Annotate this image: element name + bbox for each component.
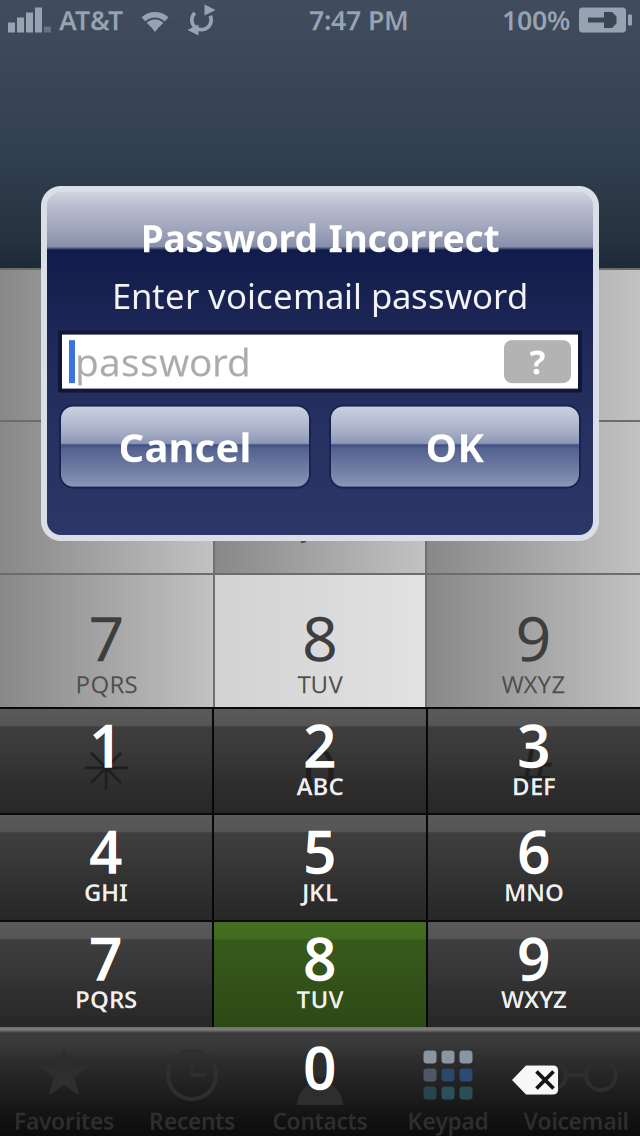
staticText: Contacts <box>272 1106 367 1136</box>
staticText: MNO <box>504 513 563 545</box>
staticText: Recents <box>149 1106 235 1136</box>
staticText: 1 <box>88 286 124 370</box>
staticText: JKL <box>302 513 337 545</box>
staticText: Cancel <box>118 420 251 473</box>
staticText: DEF <box>512 770 556 802</box>
staticText: 3 <box>517 706 551 784</box>
staticText: 9 <box>515 595 551 679</box>
staticText: 7 <box>88 595 124 679</box>
button[interactable]: Cancel <box>60 406 310 488</box>
staticText: ? <box>529 339 545 384</box>
staticText: DEF <box>512 359 555 391</box>
staticText: WXYZ <box>501 668 565 700</box>
staticText: JKL <box>302 876 338 908</box>
button[interactable]: 0 <box>214 707 426 813</box>
staticText: 0 <box>303 1028 337 1106</box>
staticText: 1 <box>89 706 123 784</box>
button[interactable]: ✳ <box>0 707 212 813</box>
button[interactable]: 4 <box>0 813 212 920</box>
staticText: WXYZ <box>501 983 567 1015</box>
button[interactable]: 0 <box>214 1043 426 1091</box>
staticText: 2 <box>302 286 338 370</box>
button[interactable]: Delete <box>512 1064 558 1096</box>
staticText: 7:47 PM <box>309 2 409 38</box>
button[interactable]: 7 <box>0 920 212 1027</box>
staticText: 100% <box>502 2 570 38</box>
staticText: PQRS <box>75 668 137 700</box>
staticText: PQRS <box>75 983 137 1015</box>
staticText: 7 <box>89 919 123 997</box>
button[interactable]: OK <box>330 406 580 488</box>
staticText: ABC <box>296 770 343 802</box>
staticText: 2 <box>303 706 337 784</box>
staticText: Favorites <box>14 1106 114 1136</box>
staticText: Password Incorrect <box>140 213 499 263</box>
button[interactable]: Contacts <box>256 1027 384 1136</box>
staticText: 0 <box>303 730 337 808</box>
staticText: TUV <box>297 668 342 700</box>
button[interactable]: 5 <box>214 813 426 920</box>
staticText: GHI <box>84 876 128 908</box>
staticText: 6 <box>515 440 551 524</box>
staticText: 3 <box>515 286 551 370</box>
staticText: OK <box>425 420 484 473</box>
staticText: MNO <box>504 876 564 908</box>
staticText: 8 <box>303 919 337 997</box>
button[interactable]: 8 <box>214 920 426 1027</box>
button[interactable]: 6 <box>428 813 640 920</box>
staticText: password <box>75 336 251 387</box>
button[interactable]: 9 <box>428 920 640 1027</box>
staticText: # <box>515 730 553 808</box>
button[interactable]: Recents <box>128 1027 256 1136</box>
button[interactable]: Voicemail <box>512 1027 640 1136</box>
staticText: GHI <box>85 513 128 545</box>
staticText: 8 <box>302 595 338 679</box>
staticText: Enter voicemail password <box>112 273 528 319</box>
button[interactable]: Favorites <box>0 1027 128 1136</box>
staticText: 6 <box>517 812 551 890</box>
staticText: TUV <box>296 983 343 1015</box>
staticText: ABC <box>297 359 343 391</box>
staticText: 5 <box>302 440 338 524</box>
staticText: ✳ <box>81 736 130 802</box>
button[interactable]: Password hint <box>504 340 571 383</box>
staticText: 4 <box>88 440 124 524</box>
staticText: 9 <box>517 919 551 997</box>
button[interactable]: # <box>428 707 640 813</box>
staticText: Voicemail <box>523 1106 628 1136</box>
staticText: 5 <box>303 812 337 890</box>
staticText: 4 <box>89 812 123 890</box>
button[interactable]: Keypad <box>384 1027 512 1136</box>
staticText: Keypad <box>407 1106 488 1136</box>
staticText: AT&T <box>59 2 123 38</box>
